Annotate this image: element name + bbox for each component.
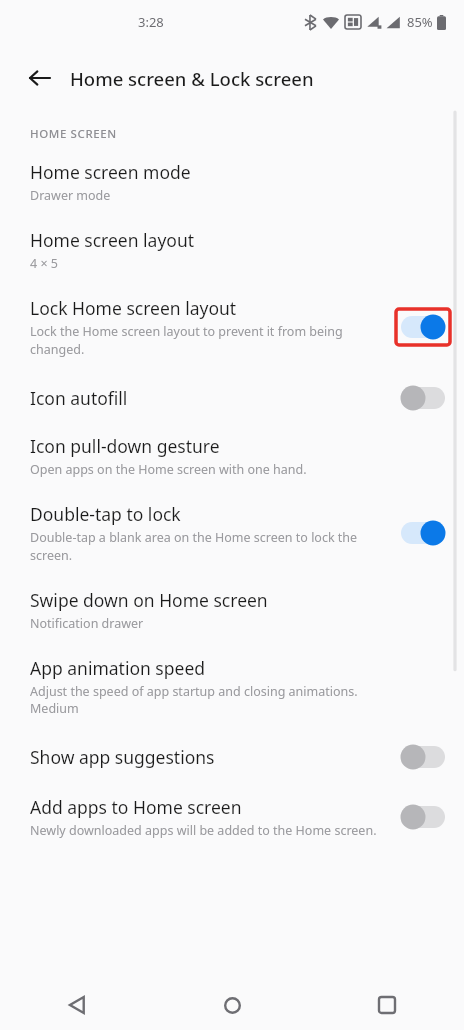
button[interactable]: Toggle off [401, 806, 445, 828]
staticText: Notification drawer [30, 615, 144, 632]
staticText: Adjust the speed of app startup and clos… [30, 683, 358, 700]
staticText: 85% [407, 13, 433, 31]
staticText: Medium [30, 700, 79, 717]
button[interactable]: Double-tap to lock [0, 494, 464, 578]
button[interactable]: Show app suggestions [0, 733, 464, 787]
staticText: Icon autofill [30, 386, 128, 410]
button[interactable]: Add apps to Home screen [0, 787, 464, 849]
button[interactable]: Icon pull-down gesture [0, 426, 464, 494]
button[interactable]: App animation speed [0, 648, 464, 733]
staticText: Home screen layout [30, 228, 195, 252]
staticText: Lock the Home screen layout to prevent i… [30, 323, 382, 358]
button[interactable]: Toggle off [401, 746, 445, 768]
button[interactable]: Toggle on [401, 316, 445, 338]
staticText: Drawer mode [30, 187, 111, 204]
staticText: Show app suggestions [30, 745, 215, 769]
button[interactable]: Home [209, 982, 255, 1028]
button[interactable]: Recent apps [364, 982, 410, 1028]
button[interactable]: Toggle on [401, 522, 445, 544]
staticText: 4 × 5 [30, 255, 58, 272]
staticText: 3:28 [138, 13, 164, 31]
button[interactable]: Back [54, 982, 100, 1028]
button[interactable]: Toggle off [401, 387, 445, 409]
staticText: Double-tap to lock [30, 502, 181, 526]
staticText: Newly downloaded apps will be added to t… [30, 822, 377, 839]
staticText: Double-tap a blank area on the Home scre… [30, 529, 382, 564]
staticText: Home screen & Lock screen [70, 66, 314, 91]
button[interactable]: Icon autofill [0, 372, 464, 426]
staticText: App animation speed [30, 656, 206, 680]
button[interactable]: Swipe down on Home screen [0, 578, 464, 648]
staticText: Lock Home screen layout [30, 296, 237, 320]
button[interactable]: Home screen mode [0, 156, 464, 220]
staticText: Home screen mode [30, 160, 191, 184]
button[interactable]: Back [18, 56, 62, 100]
staticText: HOME SCREEN [30, 126, 117, 142]
staticText: Icon pull-down gesture [30, 434, 220, 458]
staticText: Add apps to Home screen [30, 795, 242, 819]
staticText: Open apps on the Home screen with one ha… [30, 461, 307, 478]
staticText: Swipe down on Home screen [30, 588, 268, 612]
button[interactable]: Lock Home screen layout [0, 288, 464, 372]
button[interactable]: Home screen layout [0, 220, 464, 288]
